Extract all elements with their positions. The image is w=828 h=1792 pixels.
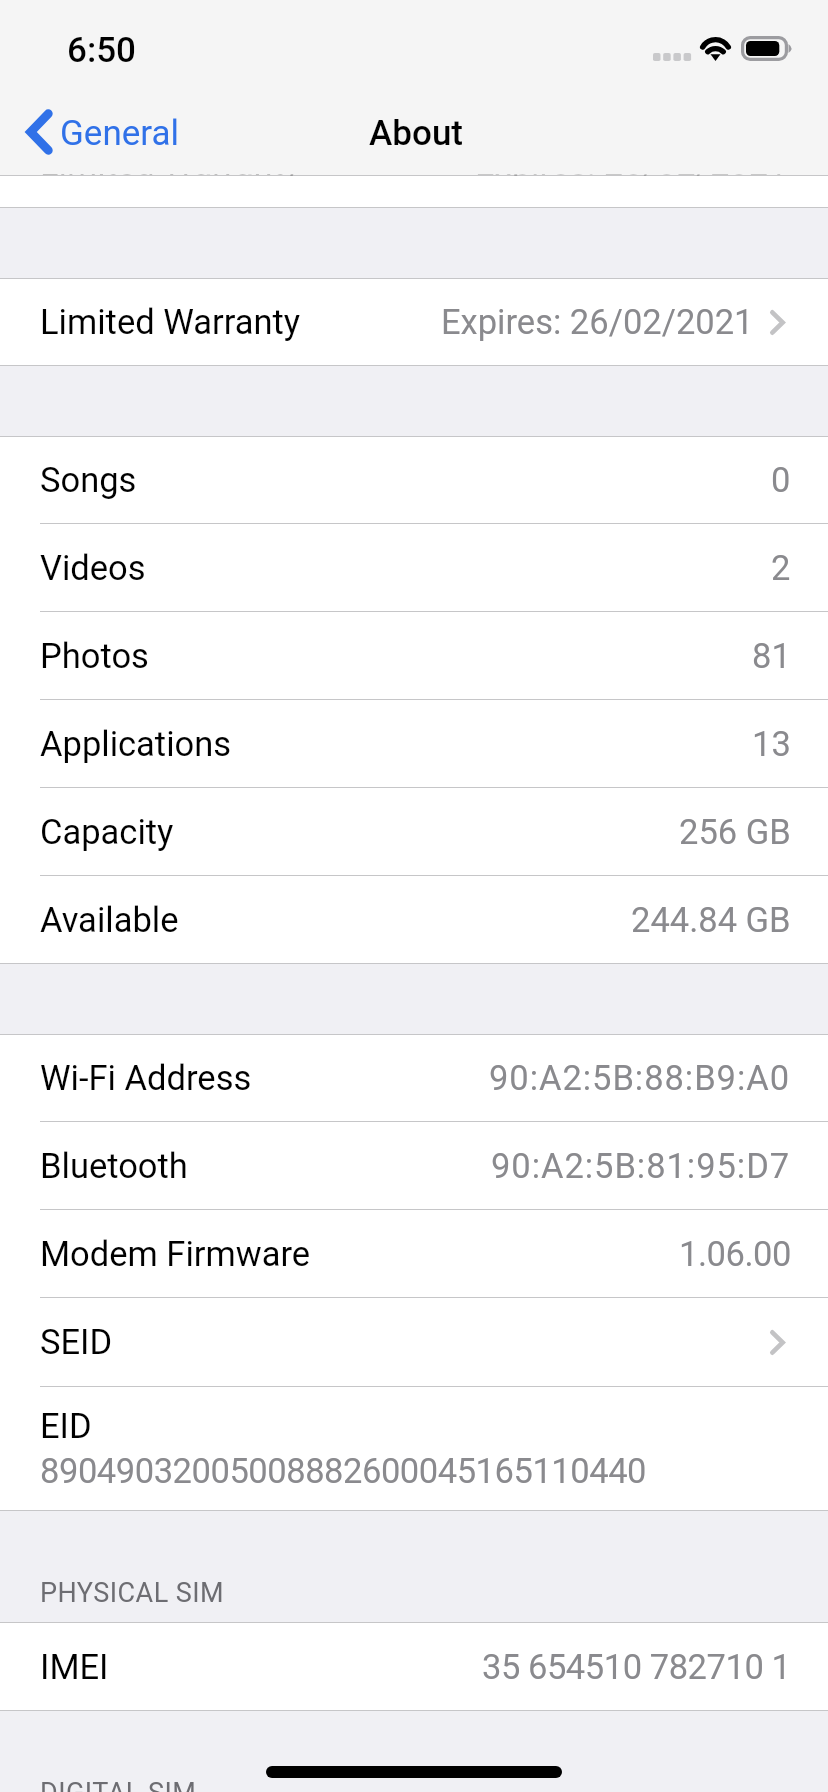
staticText: PHYSICAL SIM	[40, 1577, 225, 1609]
staticText: 90:A2:5B:81:95:D7	[491, 1146, 791, 1186]
button[interactable]: Modem Firmware	[0, 1210, 828, 1297]
staticText: Limited Warranty	[40, 174, 301, 176]
staticText: Capacity	[40, 812, 174, 852]
staticText: 1.06.00	[679, 1234, 791, 1274]
staticText: Bluetooth	[40, 1146, 188, 1186]
button[interactable]: Songs	[0, 437, 828, 523]
staticText: Applications	[40, 724, 232, 764]
button[interactable]: IMEI	[0, 1623, 828, 1710]
staticText: IMEI	[40, 1647, 109, 1687]
button[interactable]: Videos	[0, 524, 828, 611]
staticText: 90:A2:5B:88:B9:A0	[489, 1058, 791, 1098]
staticText: General	[60, 113, 180, 154]
staticText: Expires: 26/02/2021	[475, 174, 788, 176]
button[interactable]: EID	[0, 1387, 828, 1510]
button[interactable]: Wi-Fi Address	[0, 1035, 828, 1121]
staticText: 244.84 GB	[631, 900, 791, 940]
staticText: SEID	[40, 1322, 113, 1362]
other: Back to General	[26, 109, 53, 155]
staticText: About	[369, 113, 464, 154]
button[interactable]: Applications	[0, 700, 828, 787]
staticText: EID	[40, 1406, 92, 1446]
button[interactable]: Capacity	[0, 788, 828, 875]
staticText: 35 654510 782710 1	[482, 1647, 791, 1687]
staticText: 89049032005008882600045165110440	[40, 1451, 647, 1491]
staticText: Expires: 26/02/2021	[441, 302, 754, 342]
staticText: Videos	[40, 548, 146, 588]
staticText: 81	[752, 636, 791, 676]
staticText: Photos	[40, 636, 149, 676]
staticText: 13	[752, 724, 791, 764]
button[interactable]: Back to General	[22, 95, 199, 176]
staticText: DIGITAL SIM	[40, 1777, 197, 1792]
staticText: 6:50	[67, 30, 136, 71]
button[interactable]: Photos	[0, 612, 828, 699]
staticText: 256 GB	[679, 812, 791, 852]
button[interactable]: Limited Warranty	[0, 279, 828, 365]
button[interactable]: Bluetooth	[0, 1122, 828, 1209]
button[interactable]: Available	[0, 876, 828, 963]
staticText: Limited Warranty	[40, 302, 301, 342]
staticText: 0	[771, 460, 791, 500]
staticText: Available	[40, 900, 179, 940]
other: Wi-Fi	[698, 32, 734, 64]
staticText: Songs	[40, 460, 137, 500]
button[interactable]: SEID	[0, 1298, 828, 1386]
staticText: Modem Firmware	[40, 1234, 311, 1274]
staticText: Wi-Fi Address	[40, 1058, 252, 1098]
staticText: 2	[771, 548, 791, 588]
